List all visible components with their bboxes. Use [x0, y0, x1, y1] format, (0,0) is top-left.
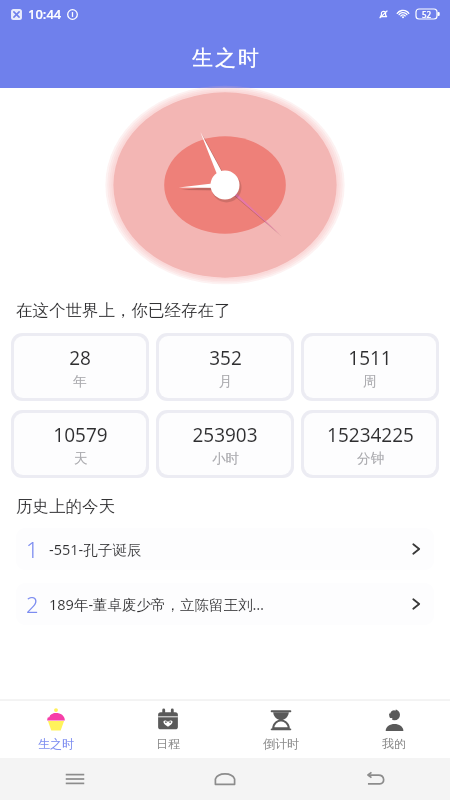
staticText: 倒计时 [263, 736, 299, 751]
staticText: 年 [73, 373, 87, 390]
button[interactable]: 倒计时 [224, 700, 337, 758]
button[interactable]: 2 [16, 583, 434, 625]
button[interactable]: 1 [16, 528, 434, 570]
staticText: 我的 [382, 736, 406, 751]
button[interactable]: 1511 [304, 336, 436, 398]
button[interactable]: 生之时 [0, 700, 112, 758]
staticText: 189年-董卓废少帝，立陈留王刘… [49, 594, 402, 614]
staticText: 1 [26, 534, 39, 564]
button[interactable]: 28 [14, 336, 146, 398]
staticText: 周 [363, 373, 377, 390]
staticText: 52 [422, 9, 432, 20]
staticText: 分钟 [357, 450, 384, 467]
staticText: 天 [74, 450, 88, 467]
staticText: 历史上的今天 [16, 496, 450, 517]
button[interactable]: Back [300, 758, 450, 800]
button[interactable]: 日程 [112, 700, 224, 758]
staticText: 2 [26, 589, 39, 619]
button[interactable]: Recent apps [0, 758, 150, 800]
button[interactable]: 352 [159, 336, 291, 398]
staticText: 10:44 [28, 5, 62, 23]
staticText: 日程 [156, 736, 180, 751]
staticText: 在这个世界上，你已经存在了 [16, 300, 450, 321]
staticText: 月 [219, 373, 233, 390]
button[interactable]: 10579 [14, 413, 146, 475]
button[interactable]: 253903 [159, 413, 291, 475]
staticText: 253903 [192, 422, 258, 448]
staticText: 生之时 [38, 736, 74, 751]
staticText: 15234225 [327, 422, 414, 448]
staticText: 1511 [348, 345, 392, 371]
staticText: 28 [69, 345, 91, 371]
staticText: 10579 [53, 422, 108, 448]
staticText: 352 [209, 345, 242, 371]
button[interactable]: 我的 [337, 700, 450, 758]
button[interactable]: Home [150, 758, 300, 800]
staticText: 小时 [212, 450, 239, 467]
button[interactable]: 15234225 [304, 413, 436, 475]
staticText: 生之时 [191, 45, 260, 71]
staticText: -551-孔子诞辰 [49, 539, 402, 559]
